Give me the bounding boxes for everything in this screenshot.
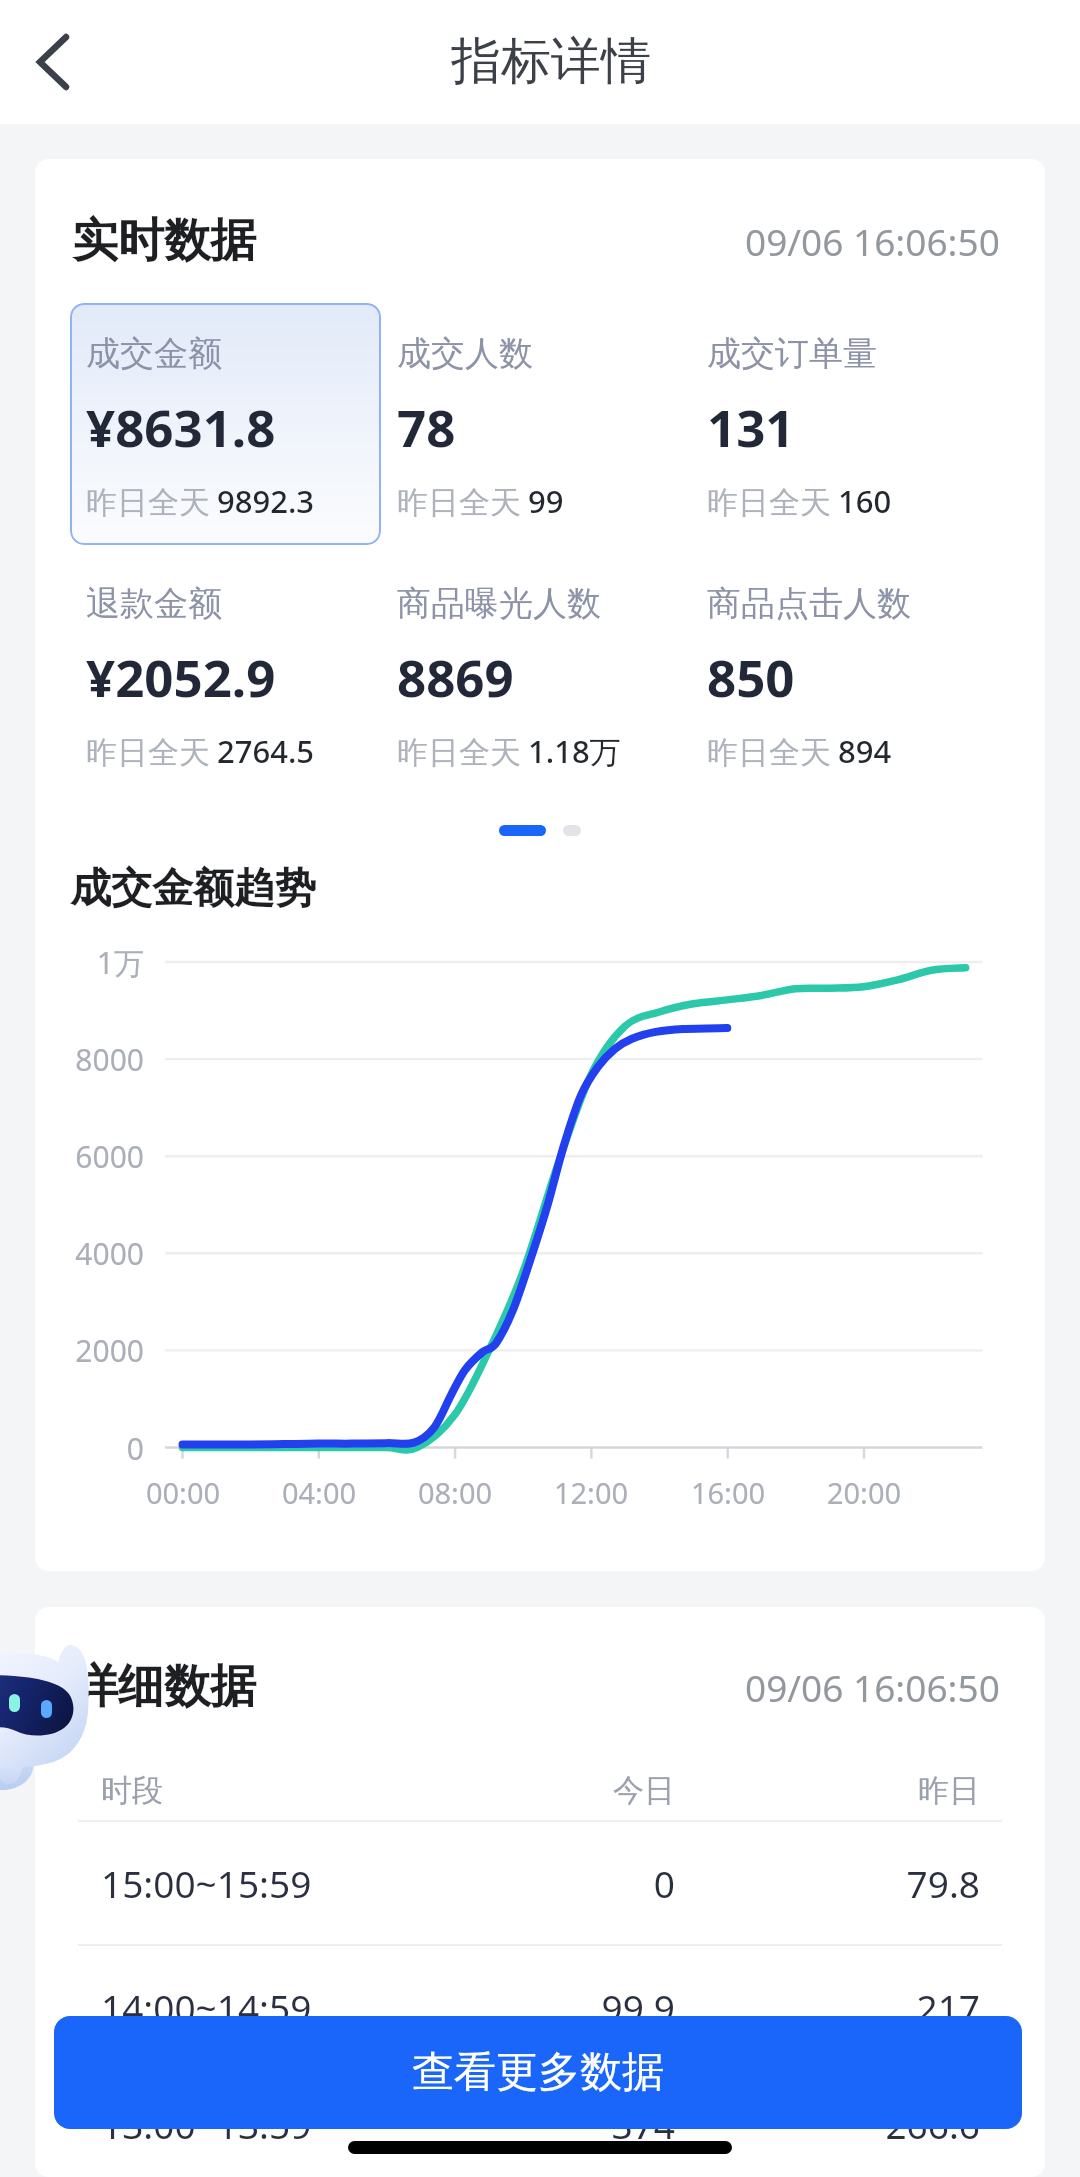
button[interactable]: 商品曝光人数 (381, 553, 691, 795)
staticText: ¥8631.8 (86, 392, 276, 461)
staticText: 查看更多数据 (412, 2046, 664, 2099)
staticText: 1.18万 (528, 730, 621, 772)
staticText: 1万 (38, 942, 144, 983)
staticText: 78 (397, 392, 456, 461)
button[interactable]: 14:00~14:59 (35, 1946, 1045, 2068)
staticText: 99 (528, 480, 564, 522)
staticText: 13:00~13:59 (101, 2099, 312, 2149)
button[interactable]: 成交金额 (70, 303, 381, 545)
staticText: 14:00~14:59 (101, 1982, 312, 2032)
staticText: 266.6 (675, 2099, 980, 2149)
button[interactable]: 查看更多数据 (54, 2016, 1022, 2129)
staticText: 时段 (101, 1771, 163, 1810)
staticText: 退款金额 (86, 582, 222, 625)
staticText: 15:00~15:59 (101, 1858, 312, 1908)
staticText: 09/06 16:06:50 (745, 1662, 1000, 1712)
staticText: 09/06 16:06:50 (745, 216, 1000, 266)
staticText: 昨日全天 (707, 483, 831, 522)
staticText: 99.9 (475, 1982, 675, 2032)
staticText: 指标详情 (451, 30, 651, 93)
staticText: 20:00 (794, 1473, 934, 1512)
staticText: 2764.5 (217, 730, 315, 772)
staticText: 成交金额 (86, 332, 222, 375)
staticText: 商品曝光人数 (397, 582, 601, 625)
button[interactable]: 15:00~15:59 (35, 1822, 1045, 1944)
staticText: 00:00 (113, 1473, 253, 1512)
button[interactable]: 退款金额 (70, 553, 381, 795)
staticText: 131 (707, 392, 795, 461)
button[interactable]: 13:00~13:59 (35, 2070, 1045, 2177)
staticText: 4000 (38, 1233, 144, 1274)
staticText: 160 (838, 480, 892, 522)
staticText: 04:00 (249, 1473, 389, 1512)
staticText: 今日 (475, 1771, 675, 1810)
staticText: 12:00 (521, 1473, 661, 1512)
staticText: 昨日全天 (707, 733, 831, 772)
staticText: 成交订单量 (707, 332, 877, 375)
staticText: 商品点击人数 (707, 582, 911, 625)
staticText: 08:00 (385, 1473, 525, 1512)
button[interactable]: 商品点击人数 (691, 553, 1001, 795)
staticText: 6000 (38, 1136, 144, 1177)
staticText: 成交人数 (397, 332, 533, 375)
staticText: 昨日 (675, 1771, 980, 1810)
staticText: 昨日全天 (86, 483, 210, 522)
staticText: 16:00 (658, 1473, 798, 1512)
staticText: 0 (38, 1428, 144, 1469)
staticText: 昨日全天 (397, 733, 521, 772)
staticText: 8000 (38, 1039, 144, 1080)
staticText: 9892.3 (217, 480, 315, 522)
staticText: 昨日全天 (86, 733, 210, 772)
button[interactable]: 成交订单量 (691, 303, 1001, 545)
staticText: 实时数据 (72, 212, 256, 270)
staticText: 374 (475, 2099, 675, 2149)
staticText: ¥2052.9 (86, 642, 276, 711)
button[interactable]: Back (14, 23, 92, 101)
staticText: 2000 (38, 1330, 144, 1371)
button[interactable]: 成交人数 (381, 303, 691, 545)
staticText: 217 (675, 1982, 980, 2032)
staticText: 成交金额趋势 (70, 863, 316, 915)
staticText: 79.8 (675, 1858, 980, 1908)
staticText: 昨日全天 (397, 483, 521, 522)
staticText: 850 (707, 642, 795, 711)
staticText: 详细数据 (72, 1658, 256, 1716)
staticText: 8869 (397, 642, 514, 711)
staticText: 0 (475, 1858, 675, 1908)
staticText: 894 (838, 730, 892, 772)
